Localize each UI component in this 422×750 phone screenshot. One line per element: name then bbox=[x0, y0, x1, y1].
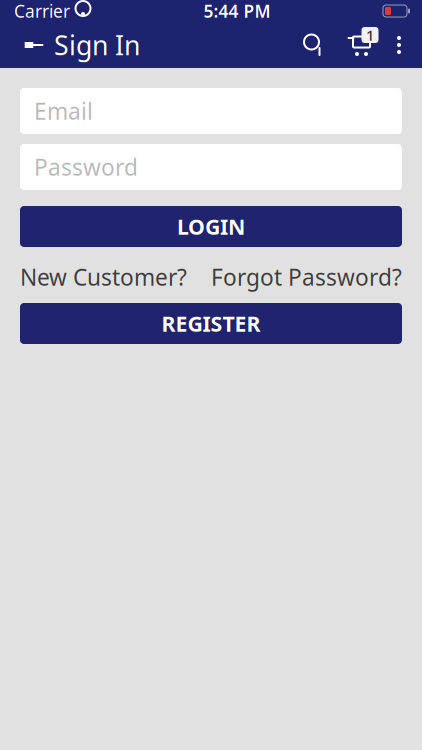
staticText: Sign In bbox=[54, 27, 140, 63]
button[interactable]: Search bbox=[292, 22, 336, 68]
button[interactable]: More options bbox=[382, 22, 416, 68]
staticText: Carrier bbox=[14, 0, 70, 22]
staticText: Email bbox=[34, 96, 93, 126]
button[interactable]: Forgot Password? bbox=[211, 262, 402, 292]
staticText: LOGIN bbox=[177, 212, 245, 241]
staticText: Forgot Password? bbox=[211, 262, 402, 292]
button[interactable]: Cart, 1 item bbox=[336, 22, 382, 68]
button[interactable]: REGISTER bbox=[20, 303, 402, 344]
button[interactable]: LOGIN bbox=[20, 206, 402, 247]
staticText: REGISTER bbox=[161, 309, 260, 338]
staticText: Password bbox=[34, 152, 138, 182]
button[interactable]: New Customer? bbox=[20, 262, 187, 292]
staticText: New Customer? bbox=[20, 262, 187, 292]
button[interactable]: Back bbox=[14, 22, 54, 68]
button[interactable]: Sign In bbox=[54, 17, 140, 73]
staticText: 5:44 PM bbox=[203, 0, 270, 22]
staticText: 1 bbox=[366, 25, 374, 45]
